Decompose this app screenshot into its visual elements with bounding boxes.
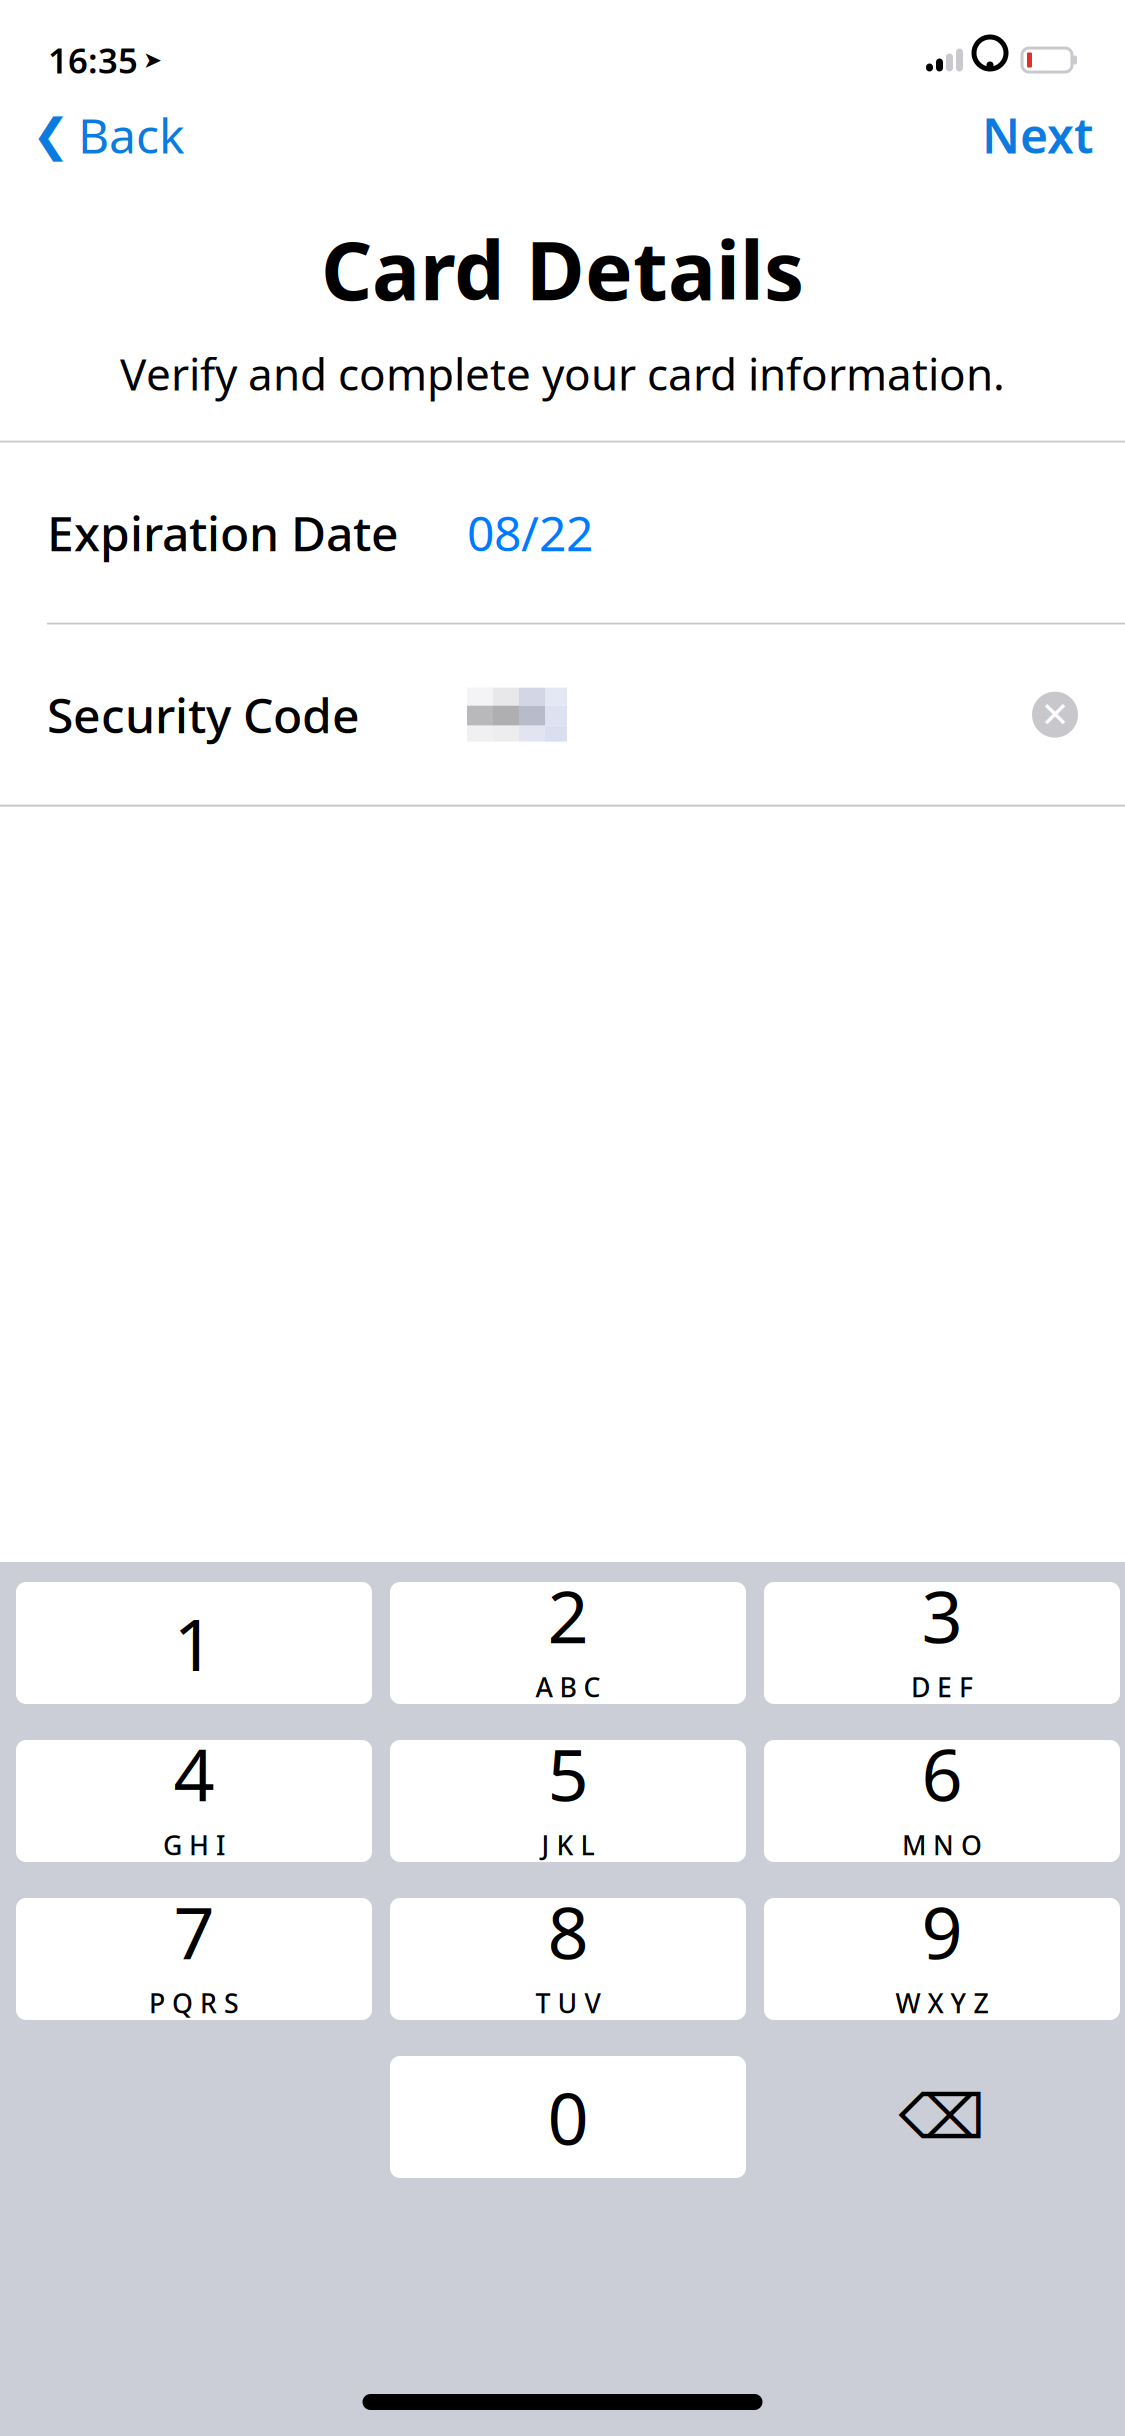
button[interactable]: Delete <box>764 2056 1120 2178</box>
button[interactable]: Expiration Date <box>0 443 1125 623</box>
staticText: Card Details <box>321 216 804 322</box>
staticText: W X Y Z <box>895 1985 988 2020</box>
button[interactable]: 0 <box>390 2056 746 2178</box>
staticText: 2 <box>547 1567 588 1663</box>
staticText: Next <box>982 103 1093 167</box>
staticText: ❮ <box>32 109 70 161</box>
button[interactable]: 8 <box>390 1898 746 2020</box>
staticText: 4 <box>173 1725 214 1821</box>
staticText: 08/22 <box>467 501 593 564</box>
staticText: 16:35 <box>48 37 138 83</box>
staticText: ✕ <box>1040 695 1069 734</box>
staticText: 1 <box>173 1595 214 1691</box>
button[interactable]: 2 <box>390 1582 746 1704</box>
staticText: Verify and complete your card informatio… <box>120 344 1005 403</box>
staticText: 9 <box>921 1883 962 1979</box>
button[interactable]: 7 <box>16 1898 372 2020</box>
button[interactable]: 6 <box>764 1740 1120 1862</box>
staticText: 7 <box>173 1883 214 1979</box>
staticText: 5 <box>547 1725 588 1821</box>
button[interactable]: ❮ <box>22 95 195 175</box>
button[interactable]: 1 <box>16 1582 372 1704</box>
staticText: ⌫ <box>898 2082 985 2152</box>
staticText: P Q R S <box>149 1985 239 2020</box>
staticText: 8 <box>547 1883 588 1979</box>
staticText: T U V <box>535 1985 600 2020</box>
staticText: 3 <box>921 1567 962 1663</box>
staticText: Security Code <box>47 683 360 746</box>
staticText: Back <box>78 103 185 167</box>
button[interactable]: 3 <box>764 1582 1120 1704</box>
staticText: M N O <box>902 1827 982 1862</box>
staticText: J K L <box>541 1827 594 1862</box>
staticText: ➤ <box>143 47 162 73</box>
staticText: D E F <box>911 1669 973 1704</box>
staticText: G H I <box>163 1827 225 1862</box>
staticText: A B C <box>535 1669 600 1704</box>
button[interactable]: 9 <box>764 1898 1120 2020</box>
button[interactable]: 5 <box>390 1740 746 1862</box>
button[interactable]: Next <box>972 95 1103 175</box>
staticText: 6 <box>921 1725 962 1821</box>
button[interactable]: 4 <box>16 1740 372 1862</box>
staticText: Expiration Date <box>47 501 399 564</box>
staticText: 0 <box>547 2069 588 2165</box>
button[interactable]: Security Code <box>0 625 1125 805</box>
